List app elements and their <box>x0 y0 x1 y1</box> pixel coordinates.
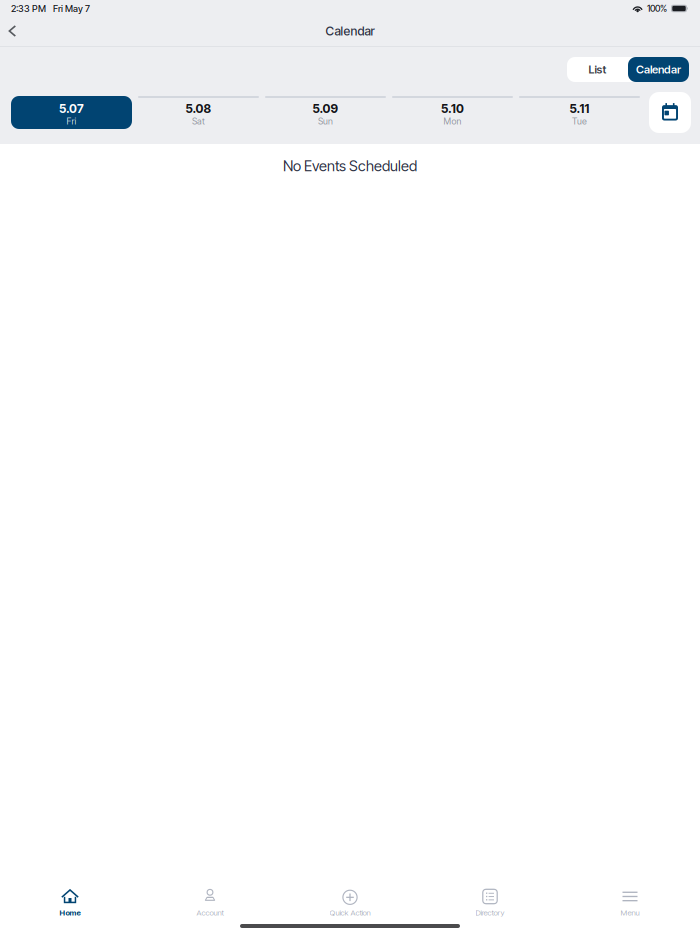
staticText: Quick Action <box>329 908 370 917</box>
button[interactable]: 5.08 <box>138 92 259 129</box>
staticText: Sun <box>318 116 333 127</box>
staticText: List <box>588 63 606 76</box>
staticText: Home <box>59 908 80 917</box>
button[interactable]: Menu <box>560 872 700 934</box>
staticText: Calendar <box>325 24 374 38</box>
button[interactable]: 5.09 <box>265 92 386 129</box>
staticText: 5.09 <box>312 101 338 116</box>
staticText: Account <box>196 908 223 917</box>
button[interactable]: Home <box>0 872 140 934</box>
staticText: Tue <box>572 116 587 127</box>
staticText: Mon <box>443 116 461 127</box>
button[interactable]: Back <box>0 18 24 44</box>
staticText: Menu <box>620 908 639 917</box>
button[interactable]: Calendar <box>628 57 689 82</box>
staticText: Directory <box>475 908 504 917</box>
staticText: 2:33 PM <box>11 3 46 14</box>
staticText: Fri <box>66 116 76 127</box>
staticText: 5.10 <box>441 101 464 116</box>
button[interactable]: 5.10 <box>392 92 513 129</box>
staticText: Sat <box>192 116 205 127</box>
button[interactable]: Quick Action <box>280 872 420 934</box>
button[interactable]: Directory <box>420 872 560 934</box>
staticText: 5.11 <box>569 101 589 116</box>
button[interactable]: Open month calendar <box>649 92 691 133</box>
button[interactable]: 5.11 <box>519 92 640 129</box>
staticText: 100% <box>647 3 667 14</box>
button[interactable]: Account <box>140 872 280 934</box>
staticText: 5.07 <box>59 101 84 116</box>
staticText: 5.08 <box>185 101 211 116</box>
staticText: No Events Scheduled <box>283 157 417 175</box>
staticText: Fri May 7 <box>53 3 90 14</box>
button[interactable]: List <box>567 57 628 82</box>
button[interactable]: 5.07 <box>11 92 132 129</box>
staticText: Calendar <box>636 63 681 76</box>
